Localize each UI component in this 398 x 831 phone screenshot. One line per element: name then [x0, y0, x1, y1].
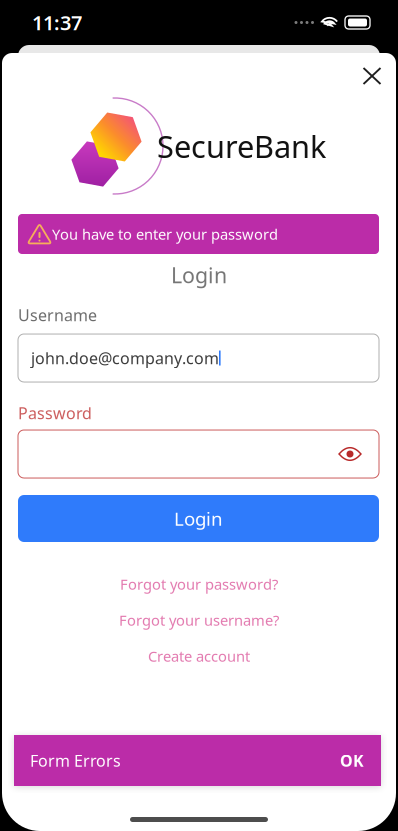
- staticText: Username: [18, 304, 97, 326]
- staticText: SecureBank: [157, 126, 326, 166]
- staticText: Forgot your username?: [119, 610, 279, 630]
- button[interactable]: Forgot your username?: [2, 609, 396, 631]
- button[interactable]: Show password: [333, 437, 367, 471]
- staticText: Login: [171, 261, 227, 289]
- button[interactable]: Close: [352, 57, 391, 95]
- button[interactable]: Create account: [2, 645, 396, 667]
- button[interactable]: Login: [18, 495, 379, 542]
- staticText: OK: [340, 750, 364, 771]
- staticText: You have to enter your password: [52, 224, 278, 244]
- staticText: 11:37: [32, 9, 82, 36]
- staticText: Login: [174, 506, 223, 531]
- staticText: Create account: [148, 646, 250, 666]
- staticText: john.doe@company.com: [31, 347, 219, 369]
- staticText: Forgot your password?: [120, 574, 278, 594]
- button[interactable]: Forgot your password?: [2, 573, 396, 595]
- staticText: Form Errors: [30, 750, 121, 771]
- staticText: Password: [18, 402, 92, 424]
- button[interactable]: OK: [334, 744, 370, 777]
